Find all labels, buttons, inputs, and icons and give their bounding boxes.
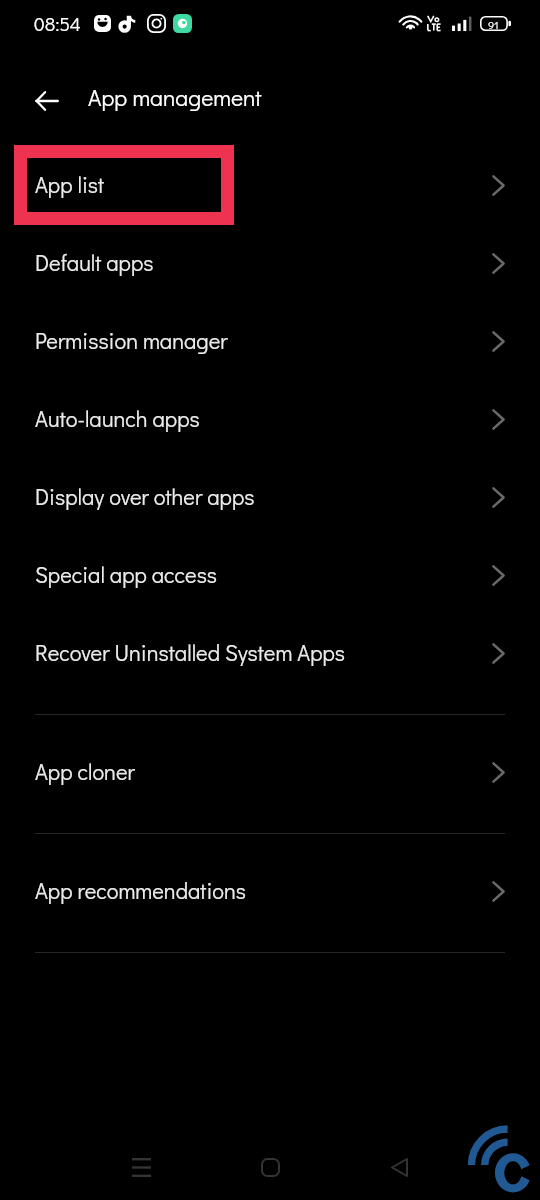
button[interactable]: Display over other apps: [0, 457, 540, 535]
button[interactable]: Back: [371, 1139, 427, 1195]
button[interactable]: Home: [242, 1139, 298, 1195]
staticText: App cloner: [35, 757, 135, 786]
staticText: Display over other apps: [35, 482, 255, 511]
staticText: App recommendations: [35, 876, 247, 905]
staticText: 08:54: [34, 11, 81, 36]
staticText: Permission manager: [35, 326, 228, 355]
button[interactable]: App list: [0, 145, 540, 223]
staticText: Recover Uninstalled System Apps: [35, 638, 346, 667]
button[interactable]: App cloner: [0, 732, 540, 810]
button[interactable]: App recommendations: [0, 851, 540, 929]
button[interactable]: Back: [23, 77, 71, 125]
button[interactable]: Auto-launch apps: [0, 379, 540, 457]
button[interactable]: Special app access: [0, 535, 540, 613]
button[interactable]: Recover Uninstalled System Apps: [0, 613, 540, 691]
staticText: App list: [35, 170, 105, 199]
staticText: Default apps: [35, 248, 154, 277]
staticText: Special app access: [35, 560, 218, 589]
staticText: App management: [88, 82, 262, 112]
button[interactable]: Permission manager: [0, 301, 540, 379]
button[interactable]: Default apps: [0, 223, 540, 301]
staticText: Auto-launch apps: [35, 404, 200, 433]
staticText: 91: [488, 17, 499, 31]
button[interactable]: Recent apps: [113, 1139, 169, 1195]
